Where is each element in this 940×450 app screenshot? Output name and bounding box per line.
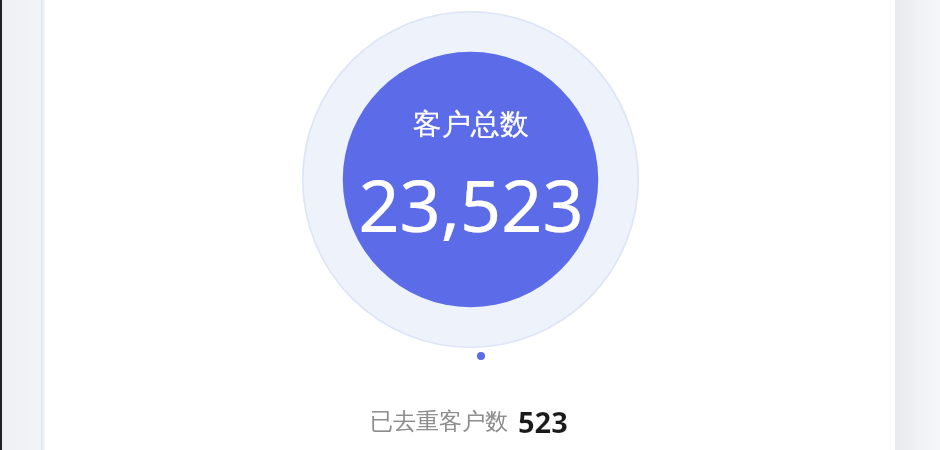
staticText: 23,523 bbox=[358, 155, 584, 253]
staticText: 523 bbox=[518, 402, 568, 441]
other: Progress marker bbox=[477, 352, 485, 360]
button[interactable]: 已去重客户数 bbox=[370, 400, 568, 442]
staticText: 已去重客户数 bbox=[370, 407, 508, 436]
staticText: 客户总数 bbox=[413, 106, 529, 143]
button[interactable]: 客户总数 bbox=[302, 11, 639, 348]
